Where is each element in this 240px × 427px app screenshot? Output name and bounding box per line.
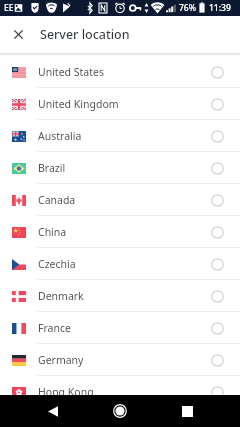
staticText: 11:39 — [209, 2, 231, 14]
staticText: United Kingdom — [38, 97, 119, 111]
button[interactable]: United States — [0, 56, 240, 88]
button[interactable]: Germany — [0, 344, 240, 376]
button[interactable]: Back — [33, 395, 73, 427]
staticText: EE — [4, 2, 14, 14]
staticText: China — [38, 225, 67, 239]
button[interactable]: Denmark — [0, 280, 240, 312]
staticText: Brazil — [38, 161, 66, 175]
staticText: Canada — [38, 193, 76, 207]
button[interactable]: Home — [100, 395, 140, 427]
button[interactable]: France — [0, 312, 240, 344]
staticText: Czechia — [38, 257, 76, 271]
staticText: 76% — [179, 2, 196, 14]
staticText: Hong Kong — [38, 385, 94, 399]
button[interactable]: Canada — [0, 184, 240, 216]
button[interactable]: United Kingdom — [0, 88, 240, 120]
button[interactable]: Brazil — [0, 152, 240, 184]
button[interactable]: Czechia — [0, 248, 240, 280]
staticText: Australia — [38, 129, 82, 143]
staticText: United States — [38, 65, 104, 79]
staticText: Server location — [40, 26, 130, 43]
button[interactable]: Hong Kong — [0, 376, 240, 408]
staticText: Denmark — [38, 289, 84, 303]
button[interactable]: China — [0, 216, 240, 248]
button[interactable]: Recents — [167, 395, 207, 427]
button[interactable]: Australia — [0, 120, 240, 152]
staticText: France — [38, 321, 71, 335]
button[interactable]: Close — [0, 16, 37, 53]
staticText: Germany — [38, 353, 84, 367]
